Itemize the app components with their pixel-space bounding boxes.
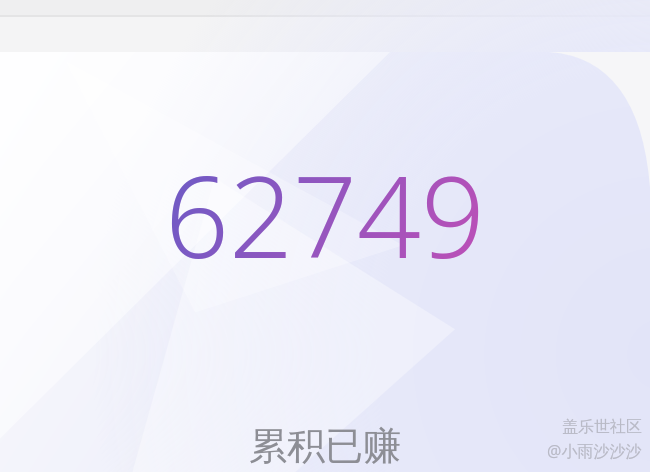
- staticText: 62749: [165, 138, 485, 291]
- staticText: 累积已赚: [249, 422, 401, 470]
- staticText: @小雨沙沙沙: [547, 440, 642, 462]
- staticText: 盖乐世社区: [562, 417, 642, 437]
- button[interactable]: 62749: [0, 52, 650, 472]
